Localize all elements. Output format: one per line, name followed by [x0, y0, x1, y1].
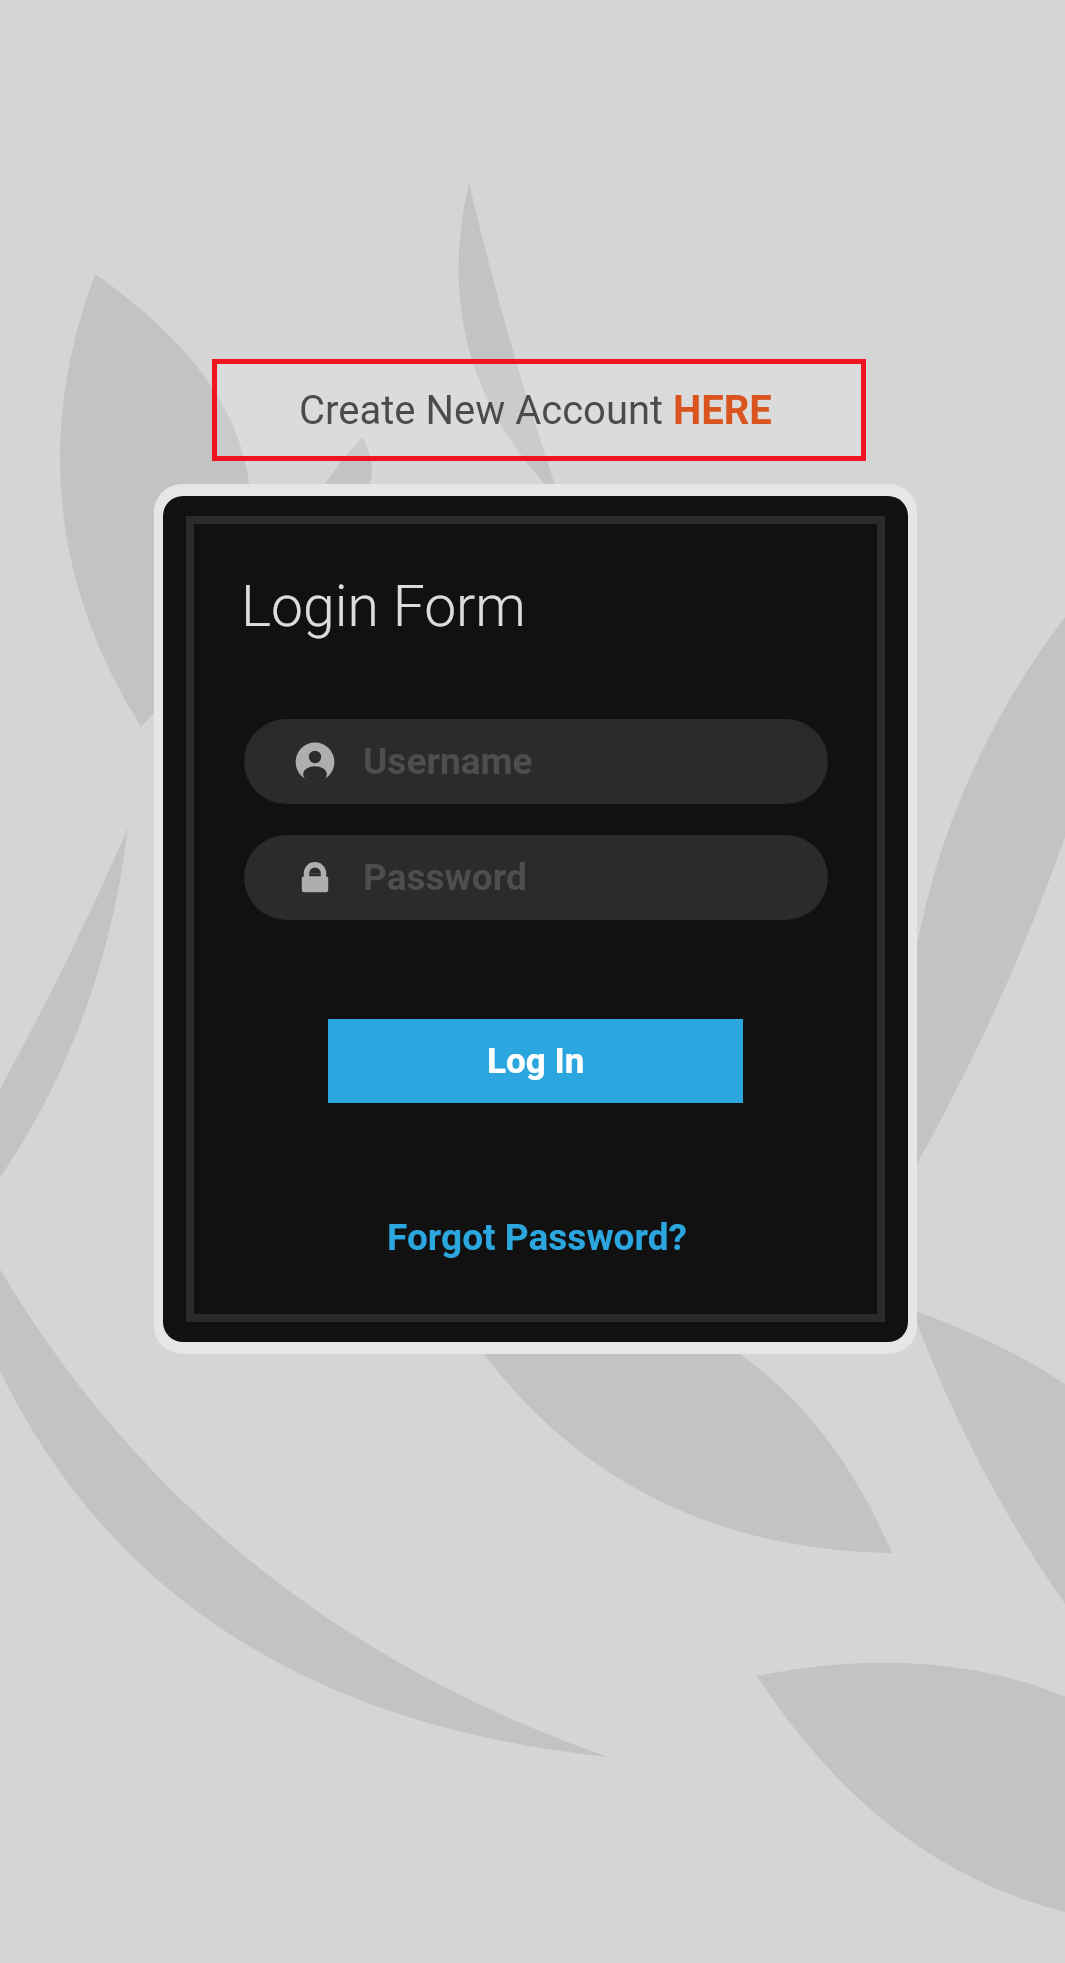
button[interactable]: Create New Account HERE — [212, 359, 866, 461]
staticText: Login Form — [241, 573, 526, 640]
button[interactable]: Username — [244, 719, 828, 804]
button[interactable]: Forgot Password? — [387, 1216, 687, 1259]
staticText: Username — [363, 740, 533, 783]
button[interactable]: Log In — [328, 1019, 743, 1103]
staticText: Create New Account HERE — [299, 387, 772, 434]
staticText: Forgot Password? — [387, 1216, 687, 1259]
staticText: Log In — [487, 1041, 585, 1082]
staticText: Password — [363, 856, 527, 899]
other: Password — [295, 858, 335, 898]
button[interactable]: Password — [244, 835, 828, 920]
other: Username — [295, 742, 335, 782]
